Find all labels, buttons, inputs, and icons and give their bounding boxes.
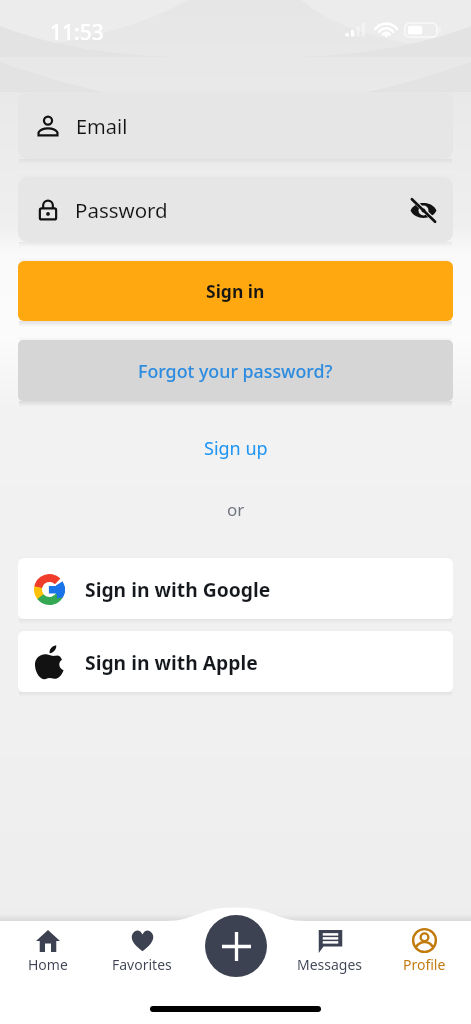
staticText: Sign in [206, 279, 265, 303]
staticText: Profile [403, 955, 446, 974]
staticText: Home [28, 955, 68, 974]
button[interactable]: Home [0, 928, 95, 974]
staticText: 11:53 [50, 18, 104, 47]
button[interactable]: Favorites [95, 928, 189, 974]
button[interactable]: Add [205, 915, 267, 977]
button[interactable]: Profile [377, 928, 471, 974]
button[interactable]: Sign in [18, 261, 453, 321]
staticText: Sign in with Apple [85, 649, 258, 675]
button[interactable]: Show password [406, 193, 440, 227]
staticText: Favorites [112, 955, 172, 974]
button[interactable]: Email [18, 93, 453, 159]
staticText: Password [75, 196, 168, 224]
staticText: Sign in with Google [85, 576, 271, 602]
button[interactable]: Sign in with Apple [18, 631, 453, 692]
button[interactable]: Forgot your password? [18, 340, 453, 401]
staticText: Messages [297, 955, 363, 974]
staticText: or [227, 498, 245, 521]
button[interactable]: Sign up [0, 430, 471, 466]
button[interactable]: Sign in with Google [18, 558, 453, 619]
staticText: Sign up [204, 436, 268, 461]
staticText: Forgot your password? [138, 359, 333, 383]
button[interactable]: Messages [283, 928, 377, 974]
button[interactable]: Password [18, 177, 453, 242]
staticText: Email [76, 113, 128, 140]
